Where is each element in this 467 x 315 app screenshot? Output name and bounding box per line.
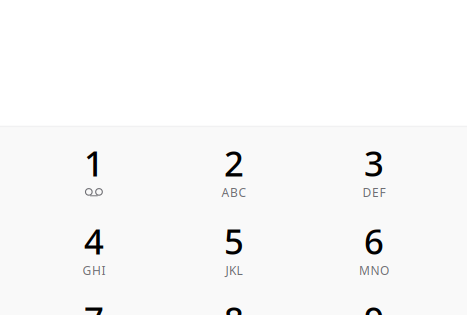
staticText: 1	[84, 140, 104, 186]
staticText: 5	[224, 218, 244, 264]
button[interactable]: 9 WXYZ	[319, 283, 429, 315]
staticText: 2	[224, 140, 244, 186]
staticText: MNO	[359, 262, 389, 278]
staticText: 3	[364, 140, 384, 186]
button[interactable]: 4 GHI	[39, 205, 149, 283]
staticText: 7	[84, 296, 104, 315]
staticText: GHI	[82, 262, 106, 278]
staticText: 9	[364, 296, 384, 315]
staticText: ABC	[221, 184, 247, 200]
staticText: 8	[224, 296, 244, 315]
button[interactable]: 3 DEF	[319, 127, 429, 205]
button[interactable]: 6 MNO	[319, 205, 429, 283]
staticText: JKL	[225, 262, 243, 278]
staticText: DEF	[362, 184, 386, 200]
staticText: 6	[364, 218, 384, 264]
button[interactable]: 8 TUV	[179, 283, 289, 315]
staticText: 4	[84, 218, 104, 264]
button[interactable]: 2 ABC	[179, 127, 289, 205]
button[interactable]: 7 PQRS	[39, 283, 149, 315]
button[interactable]: 1 Voicemail	[39, 127, 149, 205]
button[interactable]: 5 JKL	[179, 205, 289, 283]
